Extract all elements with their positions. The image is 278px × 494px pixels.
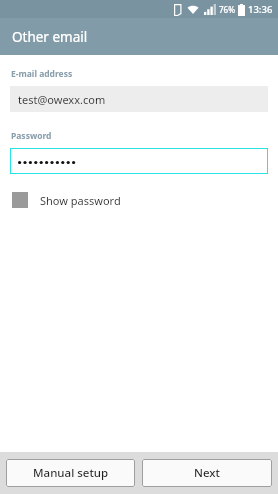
- staticText: 13:36: [248, 3, 273, 16]
- staticText: Next: [194, 465, 220, 481]
- staticText: Password: [11, 130, 52, 142]
- button[interactable]: Next: [142, 459, 272, 487]
- staticText: 76%: [219, 4, 235, 15]
- button[interactable]: Show password: [8, 188, 121, 212]
- staticText: test@owexx.com: [18, 92, 106, 107]
- button[interactable]: [10, 148, 268, 174]
- staticText: E-mail address: [11, 68, 73, 80]
- staticText: Show password: [40, 193, 121, 208]
- staticText: Other email: [12, 28, 88, 46]
- staticText: Manual setup: [33, 465, 109, 481]
- button[interactable]: test@owexx.com: [10, 86, 268, 112]
- button[interactable]: Manual setup: [6, 459, 135, 487]
